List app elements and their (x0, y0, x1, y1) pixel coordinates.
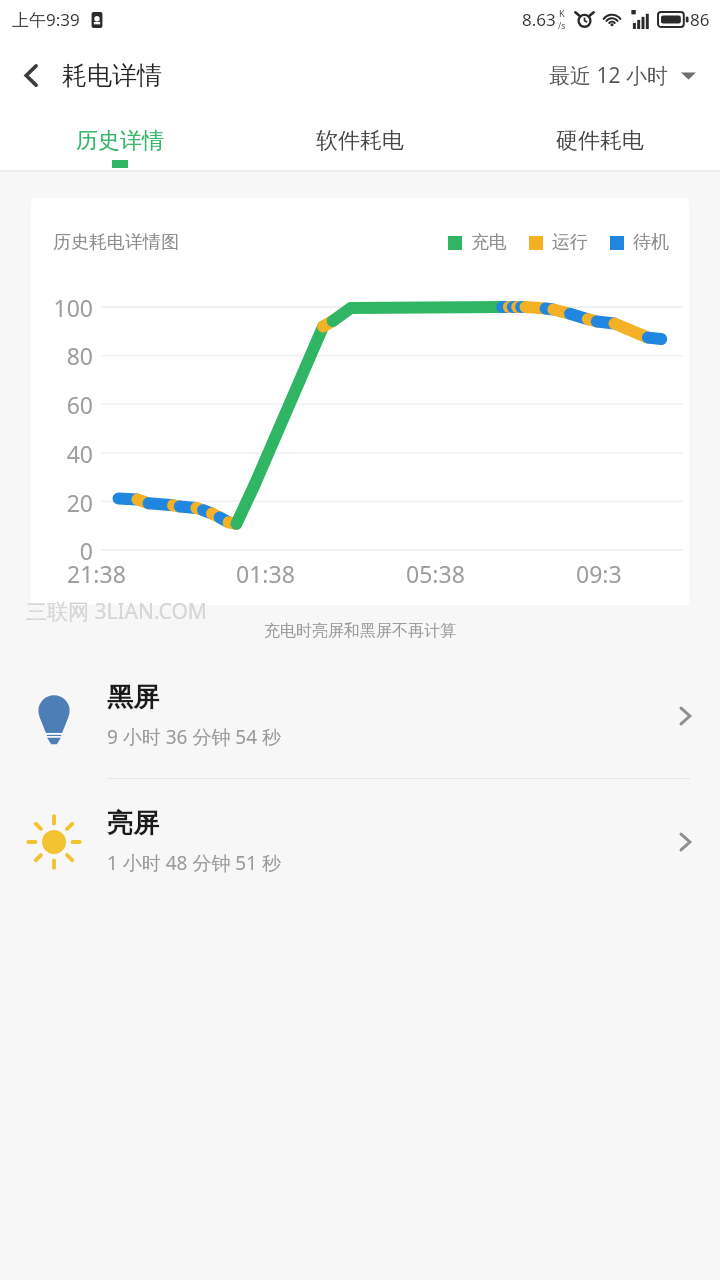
staticText: 09:3 (576, 558, 622, 589)
staticText: 历史耗电详情图 (53, 231, 179, 254)
staticText: 21:38 (67, 558, 126, 589)
button[interactable]: 软件耗电 (240, 112, 480, 170)
staticText: 60 (31, 389, 93, 420)
staticText: 0 (31, 535, 93, 566)
staticText: 亮屏 (107, 807, 159, 840)
staticText: 上午9:39 (12, 8, 80, 31)
staticText: 历史详情 (76, 127, 164, 155)
staticText: K (559, 7, 565, 19)
staticText: 软件耗电 (316, 127, 404, 155)
staticText: 1 小时 48 分钟 51 秒 (107, 850, 282, 876)
button[interactable]: 亮屏 (0, 779, 720, 904)
button[interactable]: 硬件耗电 (480, 112, 720, 170)
staticText: 20 (31, 487, 93, 518)
button[interactable]: 历史详情 (0, 112, 240, 170)
staticText: 最近 12 小时 (549, 61, 668, 90)
staticText: 01:38 (236, 558, 295, 589)
staticText: 9 小时 36 分钟 54 秒 (107, 724, 282, 750)
staticText: 充电时亮屏和黑屏不再计算 (0, 621, 720, 641)
staticText: 100 (31, 292, 93, 323)
button[interactable]: 最近 12 小时 (543, 53, 702, 98)
staticText: 运行 (552, 231, 588, 254)
staticText: 待机 (633, 231, 669, 254)
staticText: 三联网 3LIAN.COM (26, 597, 207, 626)
staticText: 硬件耗电 (556, 127, 644, 155)
staticText: 8.63 (522, 8, 556, 31)
staticText: 耗电详情 (62, 60, 162, 91)
button[interactable]: 黑屏 (0, 653, 720, 778)
staticText: 80 (31, 340, 93, 371)
staticText: 86 (690, 8, 710, 31)
staticText: 40 (31, 438, 93, 469)
button[interactable]: Back (0, 44, 62, 106)
staticText: 05:38 (406, 558, 465, 589)
staticText: 充电 (471, 231, 507, 254)
staticText: 黑屏 (107, 681, 159, 714)
staticText: /s (558, 19, 566, 31)
